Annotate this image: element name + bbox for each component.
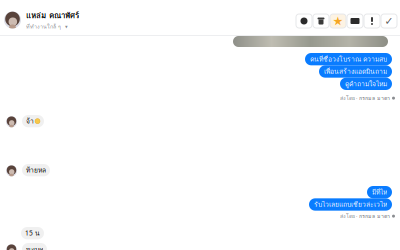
staticText: กรกมล มาดา	[359, 94, 390, 102]
staticText: แหล่ม คณาพัศร์	[26, 9, 79, 22]
button[interactable]: Star	[330, 14, 346, 28]
button[interactable]: Archive	[313, 14, 329, 28]
staticText: ★	[332, 14, 343, 28]
staticText: ที่ทำงานใกล้ ๆ ▾	[26, 23, 68, 31]
button[interactable]: Details	[296, 14, 312, 28]
staticText: ดูคำถามใจไหม	[345, 79, 387, 89]
staticText: เพื่อนสร้างแอดมินถาม	[324, 66, 387, 77]
button[interactable]: Mark unread	[347, 14, 363, 28]
staticText: รับไวเลยแถบเชียวล่ะเวไห	[314, 199, 387, 210]
staticText: ส่งโดย ·	[340, 212, 357, 220]
staticText: ท้ายหล	[26, 165, 46, 175]
button[interactable]: Mark done	[381, 14, 397, 28]
button[interactable]: Report	[364, 14, 380, 28]
button[interactable]: แหล่ม คณาพัศร์	[4, 11, 79, 29]
staticText: กรกมล มาดา	[359, 212, 390, 220]
staticText: 15 น	[25, 228, 40, 238]
staticText: ขอบคุ	[26, 244, 43, 250]
staticText: ส่งโดย ·	[340, 94, 357, 102]
staticText: คนที่ชื่อวงโบราณ ความสบ	[310, 54, 387, 64]
staticText: ✓	[384, 15, 393, 27]
staticText: มีที่ไห	[372, 187, 387, 197]
staticText: จ้า	[26, 116, 34, 126]
